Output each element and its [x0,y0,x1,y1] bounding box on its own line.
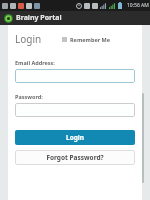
button[interactable]: Forgot Password? [15,150,135,165]
staticText: Remember Me [70,36,111,43]
staticText: Login [66,133,84,142]
staticText: 10:56 AM [127,2,149,9]
staticText: Brainy Portal [16,13,62,23]
other: App icon [4,14,13,23]
button[interactable]: Password field [15,103,135,117]
staticText: Email Address: [15,59,55,66]
staticText: Login [15,32,42,46]
staticText: Forgot Password? [46,153,104,162]
staticText: Password: [15,93,43,100]
button[interactable]: Email Address field [15,69,135,83]
button[interactable]: Login [15,130,135,145]
button[interactable]: Remember Me [62,36,111,43]
